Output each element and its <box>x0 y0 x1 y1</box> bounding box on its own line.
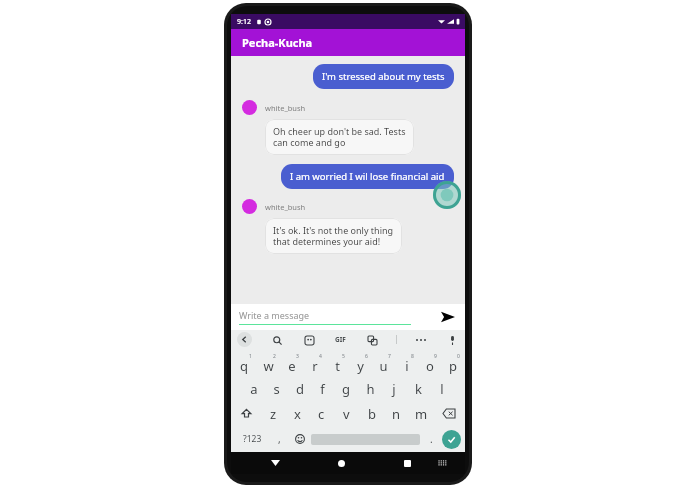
staticText: It's ok. It's not the only thing that de… <box>273 224 394 248</box>
staticText: 3 <box>296 353 299 360</box>
staticText: 7 <box>388 353 391 360</box>
button[interactable]: Sticker <box>302 333 316 347</box>
staticText: b <box>368 405 376 423</box>
staticText: 5 <box>342 353 345 360</box>
staticText: k <box>415 380 422 398</box>
staticText: 6 <box>365 353 368 360</box>
button[interactable]: Emoji <box>289 426 311 452</box>
staticText: t <box>335 357 340 375</box>
button[interactable]: 3 <box>280 351 303 376</box>
staticText: 9 <box>434 353 437 360</box>
button[interactable]: 9 <box>418 351 441 376</box>
button[interactable]: f <box>311 376 334 401</box>
staticText: 2 <box>273 353 276 360</box>
button[interactable]: Enter <box>442 430 461 449</box>
staticText: Oh cheer up don't be sad. Tests can come… <box>273 125 406 149</box>
staticText: g <box>342 380 350 398</box>
staticText: 4 <box>319 353 322 360</box>
staticText: I'm stressed about my tests <box>322 70 445 83</box>
button[interactable]: 5 <box>326 351 349 376</box>
staticText: white_bush <box>265 103 306 113</box>
button[interactable]: 7 <box>372 351 395 376</box>
staticText: e <box>288 357 296 375</box>
button[interactable]: n <box>384 401 409 426</box>
staticText: u <box>379 357 388 375</box>
staticText: m <box>415 405 428 423</box>
staticText: h <box>366 380 375 398</box>
button[interactable]: Pecha-Kucha <box>231 29 465 56</box>
button[interactable]: a <box>242 376 265 401</box>
button[interactable]: Back <box>266 454 284 472</box>
staticText: l <box>440 380 444 398</box>
button[interactable]: j <box>382 376 406 401</box>
button[interactable]: h <box>358 376 382 401</box>
button[interactable]: More options <box>414 333 428 347</box>
staticText: q <box>240 357 248 375</box>
staticText: y <box>357 357 364 375</box>
button[interactable]: 0 <box>441 351 464 376</box>
staticText: 0 <box>457 353 460 360</box>
staticText: d <box>296 380 304 398</box>
button[interactable]: white_bush avatar <box>242 100 257 115</box>
button[interactable]: 1 <box>232 351 256 376</box>
button[interactable]: Voice input <box>445 333 459 347</box>
staticText: . <box>430 432 433 446</box>
button[interactable]: b <box>359 401 384 426</box>
button[interactable]: k <box>406 376 430 401</box>
staticText: f <box>320 380 325 398</box>
button[interactable]: s <box>265 376 288 401</box>
staticText: x <box>294 405 301 423</box>
button[interactable]: v <box>334 401 359 426</box>
staticText: c <box>318 405 325 423</box>
button[interactable]: x <box>285 401 309 426</box>
button[interactable]: , <box>269 426 289 452</box>
button[interactable]: Translate <box>365 333 379 347</box>
button[interactable]: g <box>334 376 358 401</box>
button[interactable]: white_bush avatar <box>242 199 257 214</box>
staticText: i <box>405 357 409 375</box>
button[interactable]: ?123 <box>235 426 269 452</box>
button[interactable]: 4 <box>303 351 326 376</box>
staticText: 9:12 <box>237 17 251 27</box>
button[interactable]: Send <box>439 308 457 326</box>
button[interactable]: Screen record <box>433 181 461 209</box>
staticText: 1 <box>249 353 252 360</box>
button[interactable]: GIF <box>333 333 348 346</box>
staticText: s <box>273 380 280 398</box>
button[interactable]: Backspace <box>434 401 464 426</box>
button[interactable]: c <box>309 401 334 426</box>
button[interactable]: Home <box>332 454 350 472</box>
button[interactable]: I am worried I wil lose financial aid <box>281 164 454 189</box>
button[interactable]: z <box>261 401 285 426</box>
staticText: p <box>449 357 457 375</box>
button[interactable]: Search <box>270 333 284 347</box>
staticText: ?123 <box>243 433 262 445</box>
staticText: Pecha-Kucha <box>242 35 313 50</box>
button[interactable]: I'm stressed about my tests <box>313 64 454 89</box>
button[interactable]: Shift <box>232 401 261 426</box>
button[interactable]: . <box>420 426 442 452</box>
staticText: GIF <box>335 335 346 344</box>
button[interactable]: Oh cheer up don't be sad. Tests can come… <box>265 119 414 155</box>
button[interactable]: Switch keyboard <box>433 454 451 472</box>
button[interactable]: 6 <box>349 351 372 376</box>
staticText: v <box>343 405 350 423</box>
staticText: w <box>263 357 274 375</box>
staticText: o <box>426 357 434 375</box>
button[interactable]: d <box>288 376 311 401</box>
button[interactable]: 2 <box>256 351 280 376</box>
button[interactable]: m <box>409 401 434 426</box>
staticText: I am worried I wil lose financial aid <box>290 170 445 183</box>
staticText: white_bush <box>265 202 306 212</box>
staticText: Write a message <box>239 309 310 321</box>
button[interactable]: l <box>430 376 454 401</box>
button[interactable]: It's ok. It's not the only thing that de… <box>265 218 402 254</box>
button[interactable]: 8 <box>395 351 418 376</box>
staticText: r <box>312 357 318 375</box>
staticText: z <box>270 405 277 423</box>
staticText: j <box>392 380 396 398</box>
button[interactable]: Recents <box>398 454 416 472</box>
button[interactable]: Back <box>237 332 252 347</box>
staticText: a <box>250 380 258 398</box>
